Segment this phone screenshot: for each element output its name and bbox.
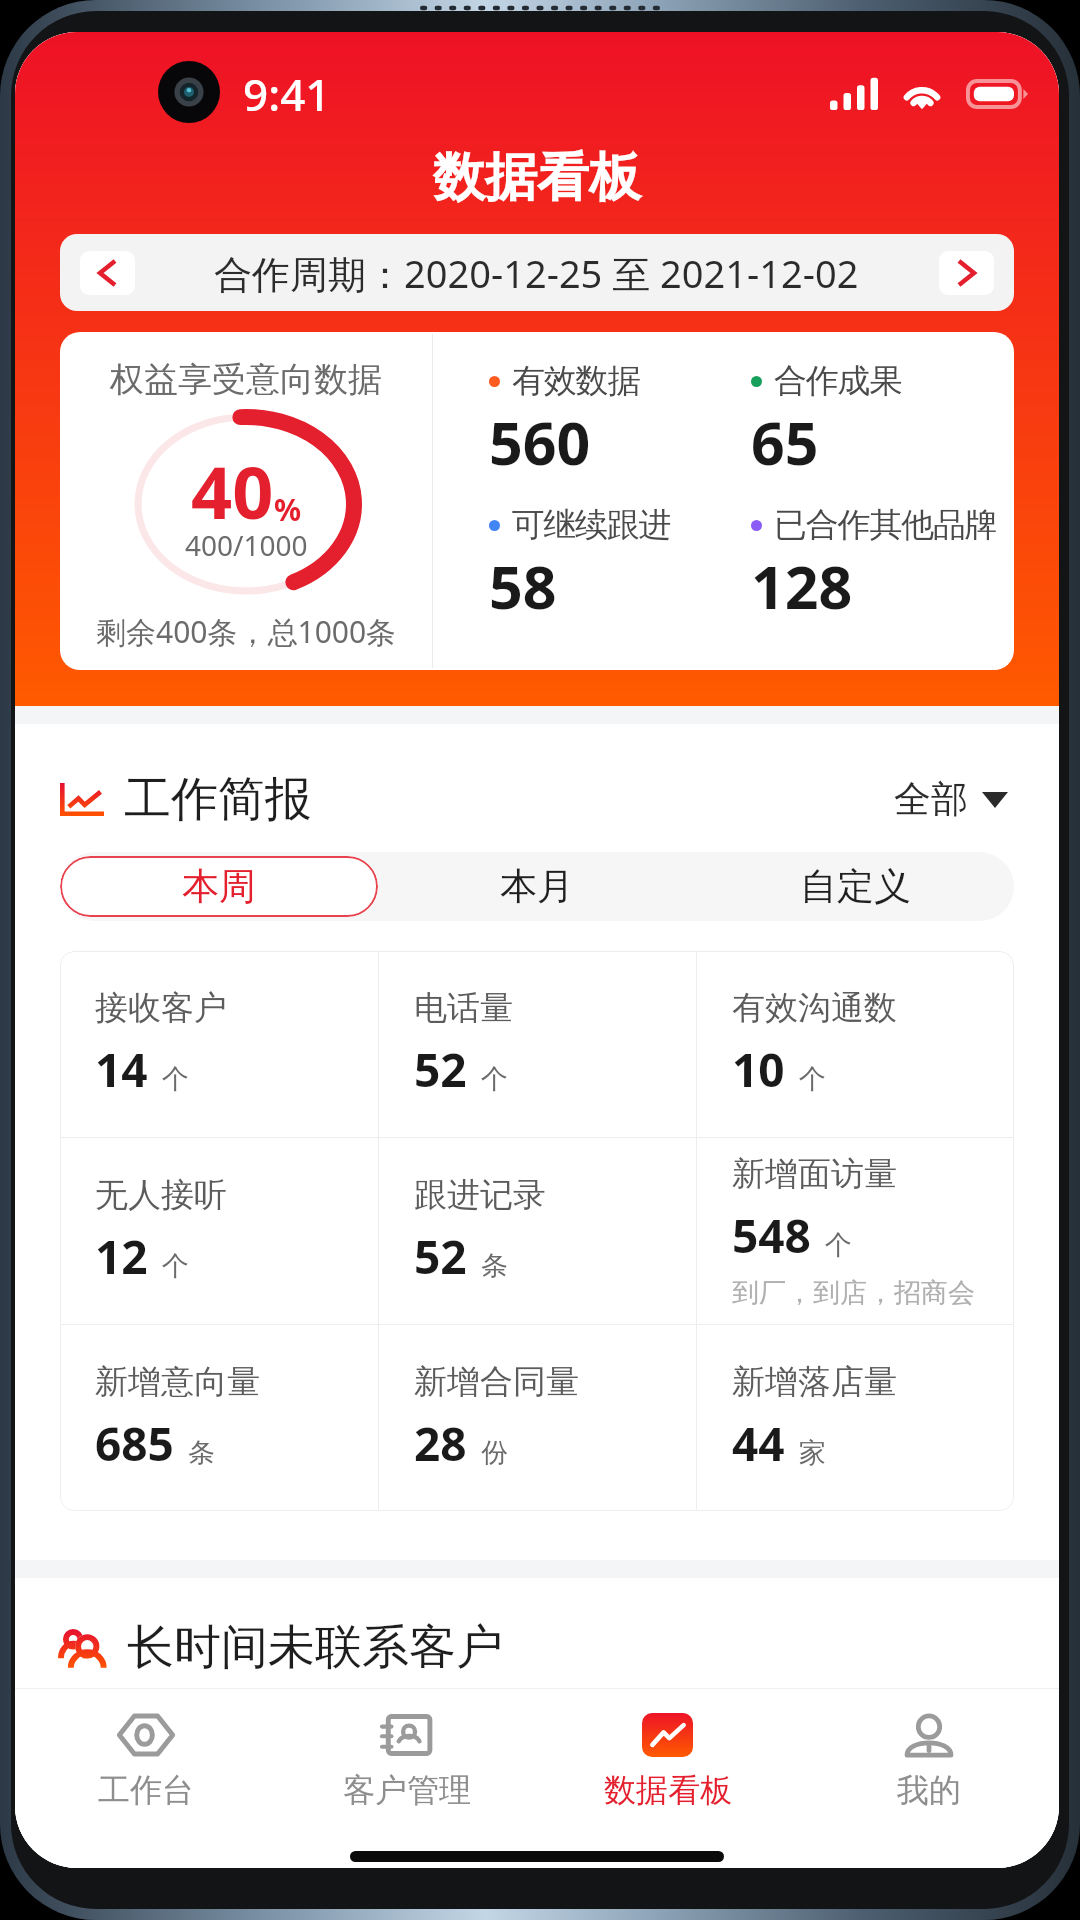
button[interactable]: 本周 [60,856,378,917]
staticText: 工作台 [98,1770,194,1810]
staticText: 条 [481,1249,508,1283]
staticText: 我的 [897,1770,961,1810]
staticText: 58 [489,546,557,626]
staticText: 新增面访量 [732,1153,897,1195]
staticText: 新增合同量 [414,1361,579,1403]
staticText: 个 [162,1062,189,1096]
staticText: 14 [95,1038,148,1101]
staticText: 52 [414,1225,467,1288]
staticText: 合作成果 [774,360,902,402]
staticText: 44 [732,1412,785,1475]
staticText: 数据看板 [604,1770,732,1810]
staticText: 到厂，到店，招商会 [732,1276,975,1310]
staticText: 无人接听 [95,1174,227,1216]
staticText: 合作周期：2020-12-25 至 2021-12-02 [214,247,859,299]
staticText: 新增意向量 [95,1361,260,1403]
staticText: 权益享受意向数据 [110,358,382,401]
staticText: 已合作其他品牌 [774,504,997,546]
staticText: 客户管理 [343,1770,471,1810]
staticText: 数据看板 [15,145,1059,211]
staticText: 全部 [894,776,968,823]
staticText: % [274,489,302,530]
staticText: 128 [751,546,853,626]
staticText: 个 [825,1228,852,1262]
staticText: 电话量 [414,987,513,1029]
staticText: 工作简报 [124,770,312,829]
staticText: 自定义 [800,863,911,910]
staticText: 28 [414,1412,467,1475]
button[interactable]: 客户管理 [276,1689,537,1820]
staticText: 新增落店量 [732,1361,897,1403]
staticText: 685 [95,1412,174,1475]
staticText: 长时间未联系客户 [127,1618,503,1677]
staticText: 可继续跟进 [512,504,671,546]
staticText: 400/1000 [185,526,308,564]
staticText: 65 [751,402,819,482]
staticText: 560 [489,402,591,482]
button[interactable]: Next period [939,251,994,295]
staticText: 10 [732,1038,785,1101]
button[interactable]: 我的 [798,1689,1059,1820]
staticText: 个 [162,1249,189,1283]
button[interactable]: 全部 [888,770,1014,829]
staticText: 个 [799,1062,826,1096]
staticText: 9:41 [243,64,331,124]
button[interactable]: 数据看板 [537,1689,798,1820]
button[interactable]: 自定义 [696,852,1014,921]
button[interactable]: 本月 [378,852,696,921]
button[interactable]: Previous period [60,234,1014,311]
staticText: 剩余400条，总1000条 [96,611,397,652]
staticText: 个 [481,1062,508,1096]
staticText: 52 [414,1038,467,1101]
staticText: 跟进记录 [414,1174,546,1216]
staticText: 份 [481,1436,508,1470]
staticText: 接收客户 [95,987,227,1029]
staticText: 40 [191,442,274,540]
staticText: 条 [188,1436,215,1470]
button[interactable]: Previous period [80,251,135,295]
staticText: 本月 [500,863,574,910]
staticText: 12 [95,1225,148,1288]
staticText: 548 [732,1204,811,1267]
staticText: 本周 [182,863,256,910]
button[interactable]: 工作台 [15,1689,276,1820]
staticText: 有效沟通数 [732,987,897,1029]
staticText: 有效数据 [512,360,640,402]
staticText: 家 [799,1436,826,1470]
